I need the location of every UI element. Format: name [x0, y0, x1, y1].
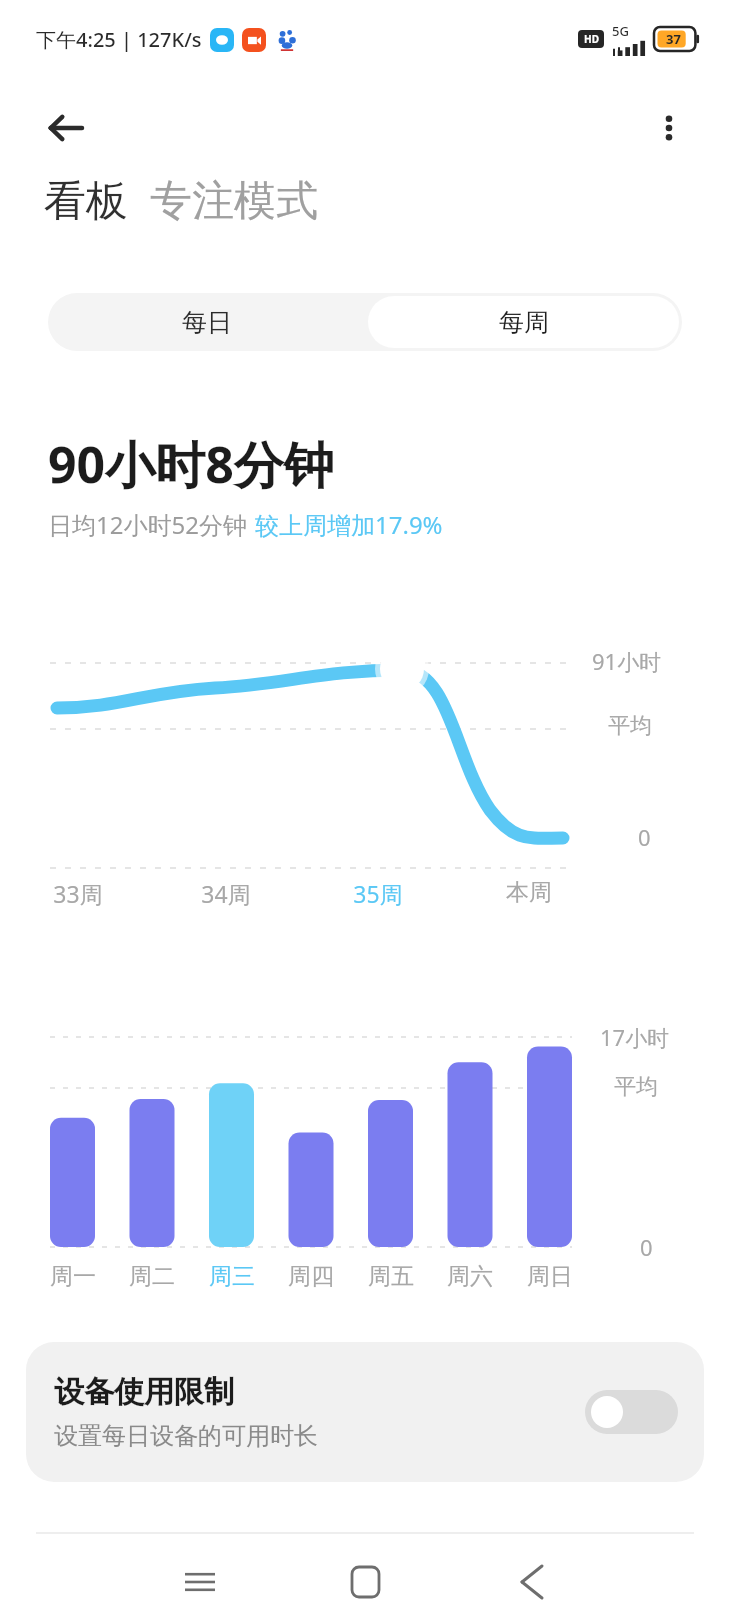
staticText: HD — [584, 32, 599, 46]
staticText: 90小时8分钟 — [48, 430, 334, 498]
staticText: 周五 — [368, 1262, 414, 1291]
staticText: 下午4:25 | 127K/s — [36, 26, 202, 53]
button[interactable]: 专注模式 — [150, 175, 318, 228]
button[interactable]: Recent apps — [152, 1534, 248, 1622]
button[interactable]: 看板 — [44, 175, 128, 228]
button[interactable]: More options — [636, 95, 702, 161]
staticText: 0 — [638, 822, 651, 852]
staticText: 34周 — [201, 878, 251, 909]
staticText: 周六 — [447, 1262, 493, 1291]
staticText: 5G — [612, 22, 629, 40]
staticText: 设置每日设备的可用时长 — [54, 1421, 318, 1451]
button[interactable]: Back — [484, 1534, 580, 1622]
staticText: 日均12小时52分钟 — [48, 508, 247, 541]
staticText: 本周 — [506, 878, 552, 907]
button[interactable]: 每周 — [368, 296, 679, 348]
button[interactable]: 设备使用限制 — [26, 1342, 704, 1482]
staticText: 设备使用限制 — [54, 1373, 234, 1411]
staticText: 专注模式 — [150, 175, 318, 228]
staticText: 17小时 — [600, 1022, 670, 1052]
staticText: 周二 — [129, 1262, 175, 1291]
staticText: 33周 — [53, 878, 103, 909]
staticText: 看板 — [44, 175, 128, 228]
staticText: 37 — [666, 30, 681, 48]
staticText: 周一 — [50, 1262, 96, 1291]
staticText: 每日 — [182, 307, 232, 338]
staticText: 35周 — [353, 878, 403, 909]
staticText: 周四 — [288, 1262, 334, 1291]
button[interactable]: 设备使用限制 toggle — [585, 1390, 678, 1434]
staticText: 91小时 — [592, 646, 662, 676]
button[interactable]: Home — [317, 1534, 413, 1622]
button[interactable]: 每日 — [48, 293, 365, 351]
staticText: 周日 — [527, 1262, 573, 1291]
staticText: 0 — [640, 1232, 653, 1262]
staticText: 周三 — [209, 1262, 255, 1291]
staticText: 每周 — [499, 307, 549, 338]
button[interactable]: Back — [30, 93, 100, 163]
staticText: 平均 — [608, 712, 652, 740]
staticText: 较上周增加17.9% — [255, 508, 443, 541]
staticText: 平均 — [614, 1073, 658, 1101]
